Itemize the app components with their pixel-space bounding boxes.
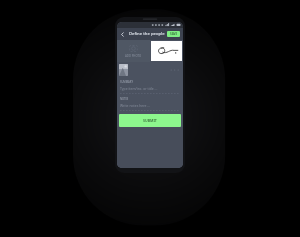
staticText: Type item/inc. or title ... — [120, 86, 158, 91]
button[interactable]: SAVE — [167, 31, 180, 37]
staticText: ADD PHOTO — [125, 54, 142, 58]
button[interactable]: Signature — [151, 41, 182, 61]
staticText: NOTES — [120, 97, 129, 101]
staticText: SUBMIT — [143, 118, 157, 123]
staticText: SUMMARY — [120, 80, 133, 84]
button[interactable]: Add photo — [117, 40, 150, 62]
button[interactable]: SUBMIT — [119, 114, 181, 127]
staticText: Write notes here ... — [120, 103, 151, 108]
button[interactable]: Photo thumbnail — [119, 64, 128, 76]
staticText: SAVE — [170, 32, 178, 36]
button[interactable]: SUMMARY — [117, 78, 183, 95]
staticText: Define the people — [129, 31, 165, 37]
button[interactable]: Back — [117, 29, 128, 40]
button[interactable]: NOTES — [117, 95, 183, 112]
